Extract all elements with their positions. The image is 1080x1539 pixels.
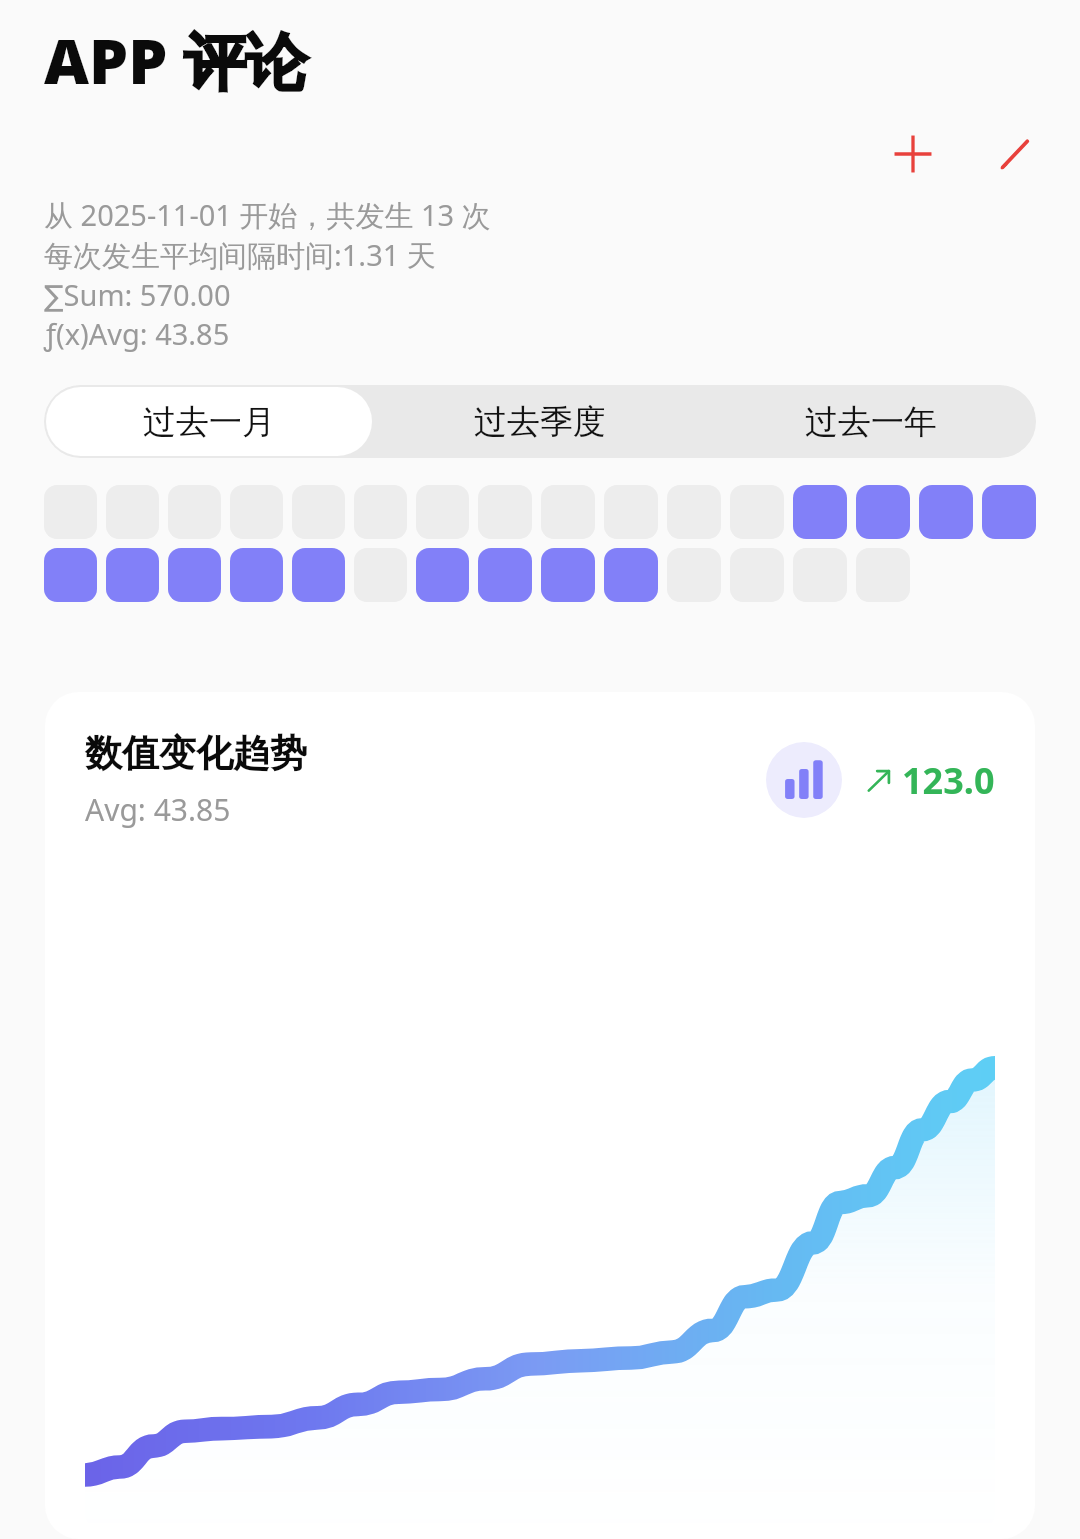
staticText: 123.0 (902, 756, 995, 805)
button[interactable]: 过去一年 (707, 387, 1034, 456)
other: Chart (766, 742, 842, 818)
staticText: ∑Sum: 570.00 (44, 275, 231, 314)
staticText: Avg: 43.85 (85, 789, 231, 830)
staticText: 数值变化趋势 (85, 730, 307, 777)
staticText: 过去一月 (143, 401, 275, 443)
button[interactable]: 过去季度 (376, 387, 703, 456)
button[interactable]: 过去一月 (46, 387, 372, 456)
staticText: APP 评论 (44, 18, 308, 103)
button[interactable]: Edit (978, 117, 1052, 191)
staticText: 每次发生平均间隔时间:1.31 天 (44, 235, 436, 275)
staticText: 过去一年 (805, 401, 937, 443)
staticText: ƒ(x)Avg: 43.85 (44, 314, 230, 353)
staticText: 过去季度 (474, 401, 606, 443)
staticText: 从 2025-11-01 开始，共发生 13 次 (44, 195, 491, 235)
button[interactable]: Add (876, 117, 950, 191)
